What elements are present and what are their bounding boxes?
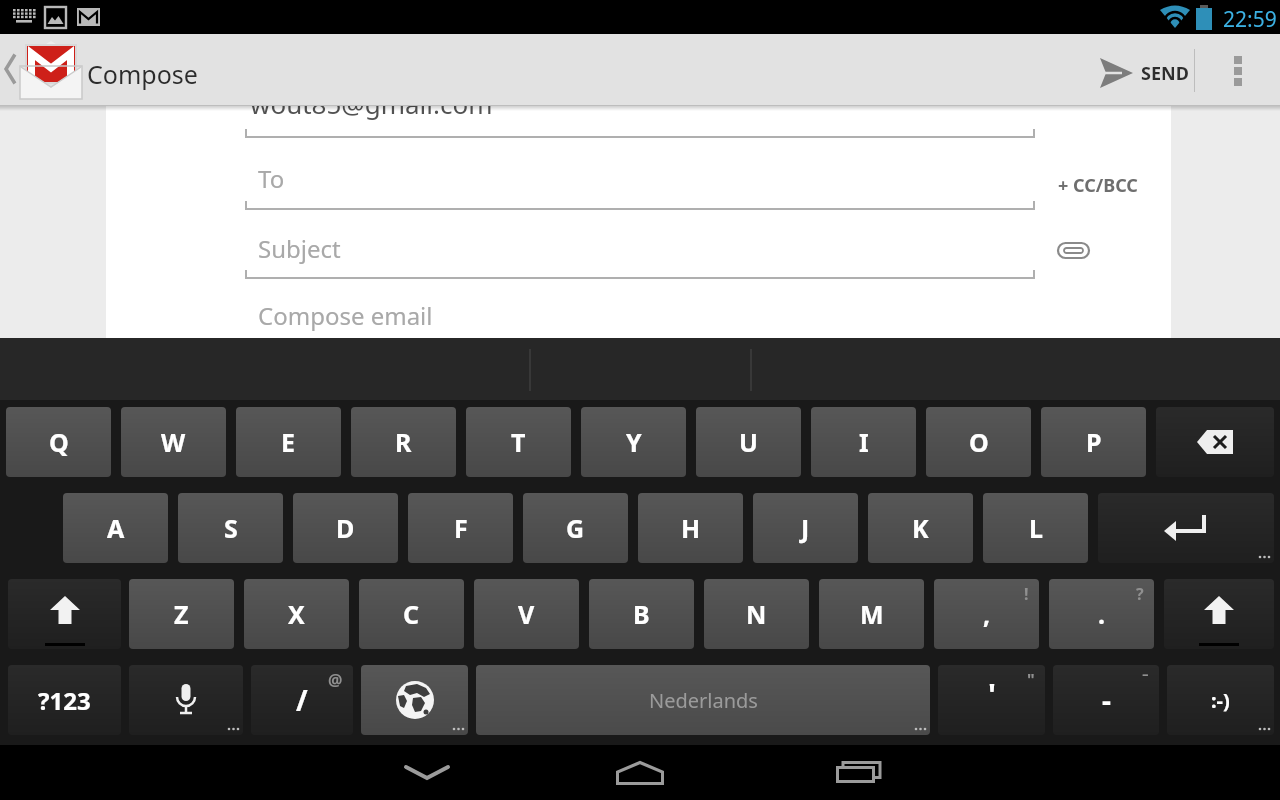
button[interactable] [390, 745, 464, 800]
button[interactable] [8, 579, 121, 649]
button[interactable]: C [359, 579, 464, 649]
button[interactable]: U [696, 407, 801, 477]
staticText: T [511, 425, 526, 459]
button[interactable]: , [934, 579, 1039, 649]
staticText: ˉ [1142, 669, 1149, 691]
button[interactable]: M [819, 579, 924, 649]
button[interactable]: . [1049, 579, 1154, 649]
staticText: To [258, 162, 285, 195]
button[interactable]: N [704, 579, 809, 649]
staticText: E [281, 425, 296, 459]
button[interactable] [1098, 493, 1274, 563]
staticText: C [403, 597, 420, 631]
button[interactable]: E [236, 407, 341, 477]
button[interactable]: J [753, 493, 858, 563]
staticText: 22:59 [1223, 5, 1277, 34]
staticText: U [739, 425, 758, 459]
button[interactable]: Q [6, 407, 111, 477]
staticText: wout85@gmail.com [250, 106, 493, 121]
button[interactable]: X [244, 579, 349, 649]
staticText: ? [1136, 583, 1144, 605]
staticText: Nederlands [649, 687, 758, 714]
staticText: B [633, 597, 650, 631]
staticText: P [1086, 425, 1102, 459]
button[interactable] [129, 665, 243, 735]
staticText: L [1029, 511, 1043, 545]
staticText: ' [988, 674, 996, 715]
button[interactable]: L [983, 493, 1088, 563]
staticText: X [288, 597, 305, 631]
button[interactable] [1222, 44, 1254, 96]
button[interactable]: W [121, 407, 226, 477]
button[interactable]: I [811, 407, 916, 477]
button[interactable]: A [63, 493, 168, 563]
staticText: ! [1024, 583, 1029, 605]
staticText: / [296, 681, 308, 719]
staticText: @ [328, 669, 343, 691]
staticText: " [1027, 669, 1035, 691]
staticText: W [161, 425, 186, 459]
button[interactable]: R [351, 407, 456, 477]
staticText: F [454, 511, 468, 545]
button[interactable]: Z [129, 579, 234, 649]
staticText: R [395, 425, 412, 459]
staticText: O [969, 425, 989, 459]
staticText: A [107, 511, 125, 545]
staticText: Q [49, 425, 69, 459]
button[interactable] [4, 56, 16, 82]
staticText: G [566, 511, 585, 545]
staticText: M [860, 597, 884, 631]
button[interactable]: K [868, 493, 973, 563]
staticText: . [1098, 597, 1106, 631]
staticText: V [518, 597, 535, 631]
button[interactable] [1156, 407, 1274, 477]
staticText: D [336, 511, 355, 545]
staticText: Z [174, 597, 189, 631]
staticText: SEND [1141, 61, 1189, 86]
staticText: Y [626, 425, 642, 459]
button[interactable]: To [245, 140, 1035, 208]
button[interactable]: O [926, 407, 1031, 477]
button[interactable]: SEND [1100, 54, 1189, 92]
button[interactable] [1058, 242, 1091, 260]
staticText: J [801, 511, 810, 545]
staticText: - [1102, 681, 1111, 719]
staticText: :-) [1211, 687, 1230, 714]
button[interactable]: F [408, 493, 513, 563]
staticText: K [912, 511, 929, 545]
staticText: Subject [258, 232, 341, 265]
button[interactable]: D [293, 493, 398, 563]
staticText: + CC/BCC [1058, 173, 1138, 198]
button[interactable] [361, 665, 468, 735]
staticText: Compose email [258, 299, 433, 332]
button[interactable]: P [1041, 407, 1146, 477]
button[interactable]: Compose email [245, 281, 1035, 337]
button[interactable]: ' [938, 665, 1045, 735]
button[interactable]: Nederlands [476, 665, 930, 735]
staticText: I [859, 425, 869, 459]
button[interactable]: H [638, 493, 743, 563]
staticText: Compose [87, 57, 198, 91]
staticText: N [746, 597, 767, 631]
button[interactable]: V [474, 579, 579, 649]
button[interactable] [603, 745, 677, 800]
staticText: H [681, 511, 701, 545]
button[interactable]: Subject [245, 212, 1035, 278]
button[interactable] [822, 745, 896, 800]
button[interactable]: T [466, 407, 571, 477]
button[interactable]: - [1053, 665, 1159, 735]
button[interactable]: Y [581, 407, 686, 477]
button[interactable]: G [523, 493, 628, 563]
staticText: , [983, 597, 991, 631]
button[interactable] [1164, 579, 1274, 649]
button[interactable]: B [589, 579, 694, 649]
button[interactable]: / [251, 665, 353, 735]
staticText: S [224, 511, 238, 545]
button[interactable]: :-) [1167, 665, 1274, 735]
staticText: ?123 [38, 684, 91, 717]
button[interactable]: ?123 [8, 665, 121, 735]
button[interactable]: S [178, 493, 283, 563]
